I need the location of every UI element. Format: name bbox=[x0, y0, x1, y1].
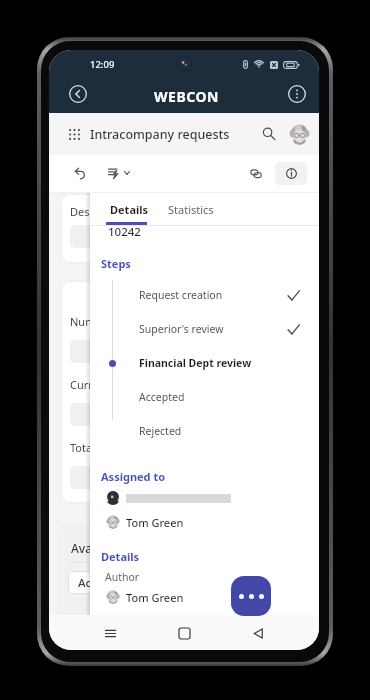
staticText: Description bbox=[70, 204, 130, 219]
button[interactable]: More actions bbox=[231, 576, 271, 616]
staticText: Request creation bbox=[139, 288, 223, 302]
button[interactable]: More options bbox=[286, 83, 308, 105]
button[interactable]: Profile bbox=[289, 124, 310, 145]
staticText: 12:09 bbox=[90, 58, 115, 71]
staticText: Details bbox=[110, 202, 149, 217]
button[interactable]: Home bbox=[171, 620, 197, 646]
button[interactable]: Back bbox=[67, 83, 89, 105]
button[interactable]: Tom Green bbox=[106, 587, 319, 607]
button[interactable]: Request creation bbox=[90, 278, 319, 312]
staticText: Details bbox=[101, 549, 140, 564]
staticText: Available paths bbox=[71, 540, 159, 556]
button[interactable]: Tom Green bbox=[106, 512, 319, 532]
button[interactable]: Search bbox=[259, 124, 279, 144]
staticText: Statistics bbox=[168, 202, 214, 217]
staticText: Accept bbox=[78, 575, 115, 591]
staticText: 10242 bbox=[108, 224, 141, 240]
button[interactable]: Info bbox=[275, 162, 307, 185]
staticText: Number bbox=[70, 314, 113, 329]
staticText: Assigned to bbox=[101, 469, 166, 484]
staticText: Currency bbox=[70, 377, 117, 392]
button[interactable]: Undo bbox=[68, 162, 90, 184]
button[interactable]: Rejected bbox=[90, 414, 319, 448]
button[interactable]: Statistics bbox=[168, 202, 214, 217]
staticText: Rejected bbox=[139, 424, 182, 438]
button[interactable]: Accepted bbox=[90, 380, 319, 414]
staticText: Accepted bbox=[139, 390, 185, 404]
button[interactable]: Accept bbox=[68, 571, 126, 594]
button[interactable]: App menu bbox=[65, 125, 83, 143]
button[interactable]: Back bbox=[245, 620, 271, 646]
staticText: Tom Green bbox=[126, 515, 184, 530]
staticText: Tom Green bbox=[126, 590, 184, 605]
button[interactable] bbox=[106, 488, 319, 508]
button[interactable]: Details bbox=[110, 202, 149, 217]
staticText: Steps bbox=[101, 256, 131, 271]
staticText: Total bbox=[70, 440, 95, 455]
button[interactable]: Workflow selector bbox=[105, 162, 135, 184]
staticText: Intracompany requests bbox=[90, 126, 230, 143]
staticText: Financial Dept review bbox=[139, 356, 252, 370]
staticText: Superior's review bbox=[139, 322, 224, 336]
button[interactable]: Superior's review bbox=[90, 312, 319, 346]
button[interactable]: Financial Dept review bbox=[90, 346, 319, 380]
button[interactable]: Recent apps bbox=[97, 620, 123, 646]
staticText: Author bbox=[105, 570, 140, 584]
staticText: WEBCON bbox=[154, 87, 219, 106]
button[interactable]: Related items bbox=[245, 162, 267, 184]
